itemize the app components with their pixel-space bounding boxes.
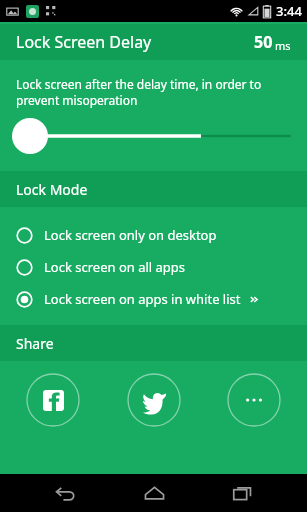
- button[interactable]: Back: [41, 474, 89, 512]
- button[interactable]: Share on Facebook: [26, 373, 80, 427]
- staticText: 3:44: [276, 2, 302, 20]
- staticText: Lock Screen Delay: [16, 31, 152, 53]
- button[interactable]: More share options: [227, 373, 281, 427]
- staticText: ms: [275, 38, 291, 53]
- staticText: 50: [254, 31, 273, 53]
- button[interactable]: Lock screen on all apps: [0, 251, 307, 283]
- staticText: Lock screen on all apps: [44, 258, 186, 276]
- button[interactable]: Home: [130, 474, 178, 512]
- button[interactable]: Lock screen on apps in white list: [0, 283, 307, 315]
- button[interactable]: Lock Screen Delay: [0, 24, 307, 60]
- staticText: Lock Mode: [16, 180, 88, 199]
- button[interactable]: Recent apps: [218, 474, 266, 512]
- staticText: Share: [16, 334, 54, 353]
- button[interactable]: Share on Twitter: [127, 373, 181, 427]
- staticText: Lock screen only on desktop: [44, 226, 217, 244]
- button[interactable]: [0, 109, 307, 159]
- button[interactable]: Lock screen only on desktop: [0, 219, 307, 251]
- staticText: Lock screen after the delay time, in ord…: [16, 76, 289, 109]
- staticText: Lock screen on apps in white list: [44, 290, 241, 308]
